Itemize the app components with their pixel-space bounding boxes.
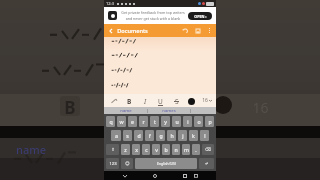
button[interactable]: e <box>128 116 137 127</box>
button[interactable]: . <box>192 144 200 155</box>
button[interactable]: s <box>123 130 132 141</box>
button[interactable]: English (US) <box>135 158 197 169</box>
staticText: j <box>182 132 184 139</box>
staticText: 123 <box>109 161 117 167</box>
button[interactable]: 16 <box>201 97 213 104</box>
staticText: e <box>131 118 134 125</box>
button[interactable]: a <box>111 130 121 141</box>
button[interactable]: Get private feedback from top writers <box>104 7 216 24</box>
button[interactable]: B <box>123 95 135 107</box>
button[interactable]: h <box>167 130 176 141</box>
staticText: x <box>135 146 138 153</box>
staticText: f <box>149 132 151 139</box>
button[interactable]: Save <box>191 24 204 37</box>
button[interactable]: OPEN › <box>188 12 212 20</box>
staticText: d <box>137 132 141 139</box>
button[interactable]: w <box>117 116 126 127</box>
staticText: l <box>204 132 206 139</box>
staticText: b <box>164 146 168 153</box>
staticText: i <box>187 118 189 125</box>
button[interactable]: f <box>145 130 154 141</box>
staticText: names <box>162 108 176 114</box>
button[interactable]: y <box>161 116 170 127</box>
staticText: r <box>142 118 145 125</box>
button[interactable]: o <box>194 116 203 127</box>
staticText: ☺ <box>125 161 130 166</box>
button[interactable]: p <box>205 116 214 127</box>
staticText: k <box>192 132 195 139</box>
staticText: Get private feedback from top writers <box>121 10 185 15</box>
staticText: I <box>144 97 147 106</box>
button[interactable]: U <box>154 95 166 107</box>
staticText: B <box>64 96 76 116</box>
staticText: OPEN › <box>194 14 207 19</box>
button[interactable]: Pen <box>108 95 120 107</box>
button[interactable]: Back <box>121 172 129 180</box>
button[interactable]: names <box>148 107 190 114</box>
staticText: m <box>184 146 189 153</box>
staticText: w <box>119 118 124 125</box>
staticText: s <box>126 132 129 139</box>
button[interactable]: Emoji <box>121 158 133 169</box>
button[interactable]: Back <box>104 24 117 37</box>
button[interactable]: S <box>170 95 182 107</box>
button[interactable]: x <box>132 144 140 155</box>
button[interactable]: i <box>183 116 192 127</box>
button[interactable]: Numbers <box>106 158 119 169</box>
staticText: g <box>159 132 163 139</box>
staticText: y <box>164 118 167 125</box>
staticText: English (US) <box>157 161 176 166</box>
button[interactable]: I <box>139 95 151 107</box>
staticText: v <box>155 146 158 153</box>
button[interactable]: k <box>189 130 198 141</box>
button[interactable]: v <box>152 144 160 155</box>
button[interactable]: Home <box>151 172 159 180</box>
staticText: Documents <box>117 27 148 35</box>
button[interactable]: q <box>106 116 115 127</box>
button[interactable]: Undo <box>178 24 191 37</box>
staticText: c <box>145 146 148 153</box>
button[interactable]: g <box>156 130 165 141</box>
staticText: name <box>120 108 132 114</box>
staticText: and never get stuck with a blank again <box>121 16 185 21</box>
button[interactable]: Recents <box>181 172 189 180</box>
staticText: n <box>174 146 178 153</box>
staticText: a <box>115 132 118 139</box>
staticText: ⇧ <box>111 147 115 152</box>
staticText: name <box>16 142 46 157</box>
staticText: U <box>158 97 163 106</box>
button[interactable]: name <box>104 107 147 114</box>
button[interactable]: n <box>172 144 180 155</box>
staticText: B <box>127 97 132 106</box>
button[interactable]: j <box>178 130 187 141</box>
button[interactable]: Shift <box>106 144 119 155</box>
button[interactable]: r <box>139 116 148 127</box>
button[interactable] <box>104 37 216 94</box>
button[interactable]: u <box>172 116 181 127</box>
staticText: q <box>109 118 113 125</box>
staticText: t <box>154 118 156 125</box>
button[interactable]: Text color <box>185 95 197 107</box>
staticText: z <box>124 146 127 153</box>
button[interactable]: Hide keyboard <box>192 172 200 180</box>
button[interactable]: More options <box>204 25 215 36</box>
staticText: S <box>175 97 179 106</box>
button[interactable]: t <box>150 116 159 127</box>
button[interactable]: c <box>142 144 150 155</box>
button[interactable]: Enter <box>199 158 214 169</box>
staticText: o <box>197 118 201 125</box>
staticText: 12:3 <box>106 1 114 6</box>
staticText: u <box>175 118 179 125</box>
button[interactable]: b <box>162 144 170 155</box>
button[interactable]: z <box>121 144 130 155</box>
button[interactable]: Backspace <box>202 144 214 155</box>
staticText: 16 <box>252 98 269 117</box>
staticText: ⌫ <box>205 147 211 152</box>
staticText: p <box>208 118 212 125</box>
staticText: . <box>195 146 197 153</box>
button[interactable]: l <box>200 130 209 141</box>
button[interactable]: m <box>182 144 190 155</box>
staticText: ↵ <box>205 161 209 166</box>
button[interactable]: d <box>134 130 143 141</box>
staticText: 16 <box>202 97 208 104</box>
